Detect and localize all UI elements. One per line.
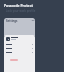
staticText: Passcode Protect <box>4 3 33 8</box>
button[interactable] <box>4 50 35 54</box>
staticText: Lock your work profile <box>6 9 36 13</box>
button[interactable] <box>10 59 18 61</box>
staticText: Settings <box>6 19 18 23</box>
button[interactable] <box>4 46 35 50</box>
button[interactable] <box>4 35 35 42</box>
button[interactable] <box>4 42 35 46</box>
